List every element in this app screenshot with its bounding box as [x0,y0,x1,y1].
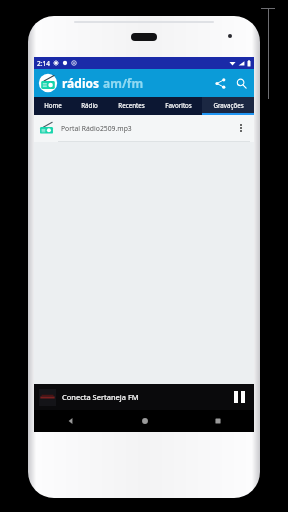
staticText: Rádio [81,101,98,109]
staticText: Home [44,101,62,109]
staticText: rádios [62,75,100,91]
staticText: Portal Rádio2509.mp3 [61,124,132,133]
staticText: Gravações [213,101,244,109]
button[interactable]: Search [232,74,250,92]
button[interactable]: More options [233,120,249,136]
button[interactable]: Home [34,97,71,113]
staticText: Recentes [118,101,145,109]
button[interactable]: Home [108,410,181,432]
button[interactable]: Recentes [107,97,155,113]
staticText: Favoritos [165,101,192,109]
button[interactable]: Back [34,410,108,432]
button[interactable]: Pause [229,387,249,407]
staticText: Conecta Sertaneja FM [62,392,139,402]
button[interactable]: Rádio [71,97,107,113]
button[interactable]: Share [211,74,229,92]
button[interactable]: Recent apps [181,410,254,432]
button[interactable]: Gravações [202,97,254,113]
button[interactable]: Favoritos [155,97,202,113]
button[interactable]: Conecta Sertaneja FM [34,384,254,410]
button[interactable]: Portal Rádio2509.mp3 [34,115,254,141]
staticText: 2:14 [37,59,50,68]
staticText: am/fm [103,75,144,91]
